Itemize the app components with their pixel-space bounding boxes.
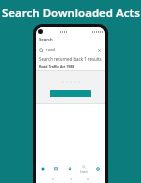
staticText: Search [80,170,89,174]
staticText: Search [39,37,53,43]
other: Search icon [39,48,44,53]
button[interactable]: Search icon [36,44,105,55]
button[interactable]: Road Traffic Act 1988 [36,63,105,70]
button[interactable]: Saved [63,163,77,175]
button[interactable]: Search [77,163,91,175]
button[interactable]: Home [36,163,49,175]
staticText: Search returned back 1 results [39,56,102,62]
staticText: road [46,47,56,53]
button[interactable]: Library [49,163,63,175]
staticText: Road Traffic Act 1988 [39,64,75,69]
other: Clear search [97,48,102,53]
button[interactable]: More [91,163,105,175]
staticText: Search Downloaded Acts [2,5,140,21]
